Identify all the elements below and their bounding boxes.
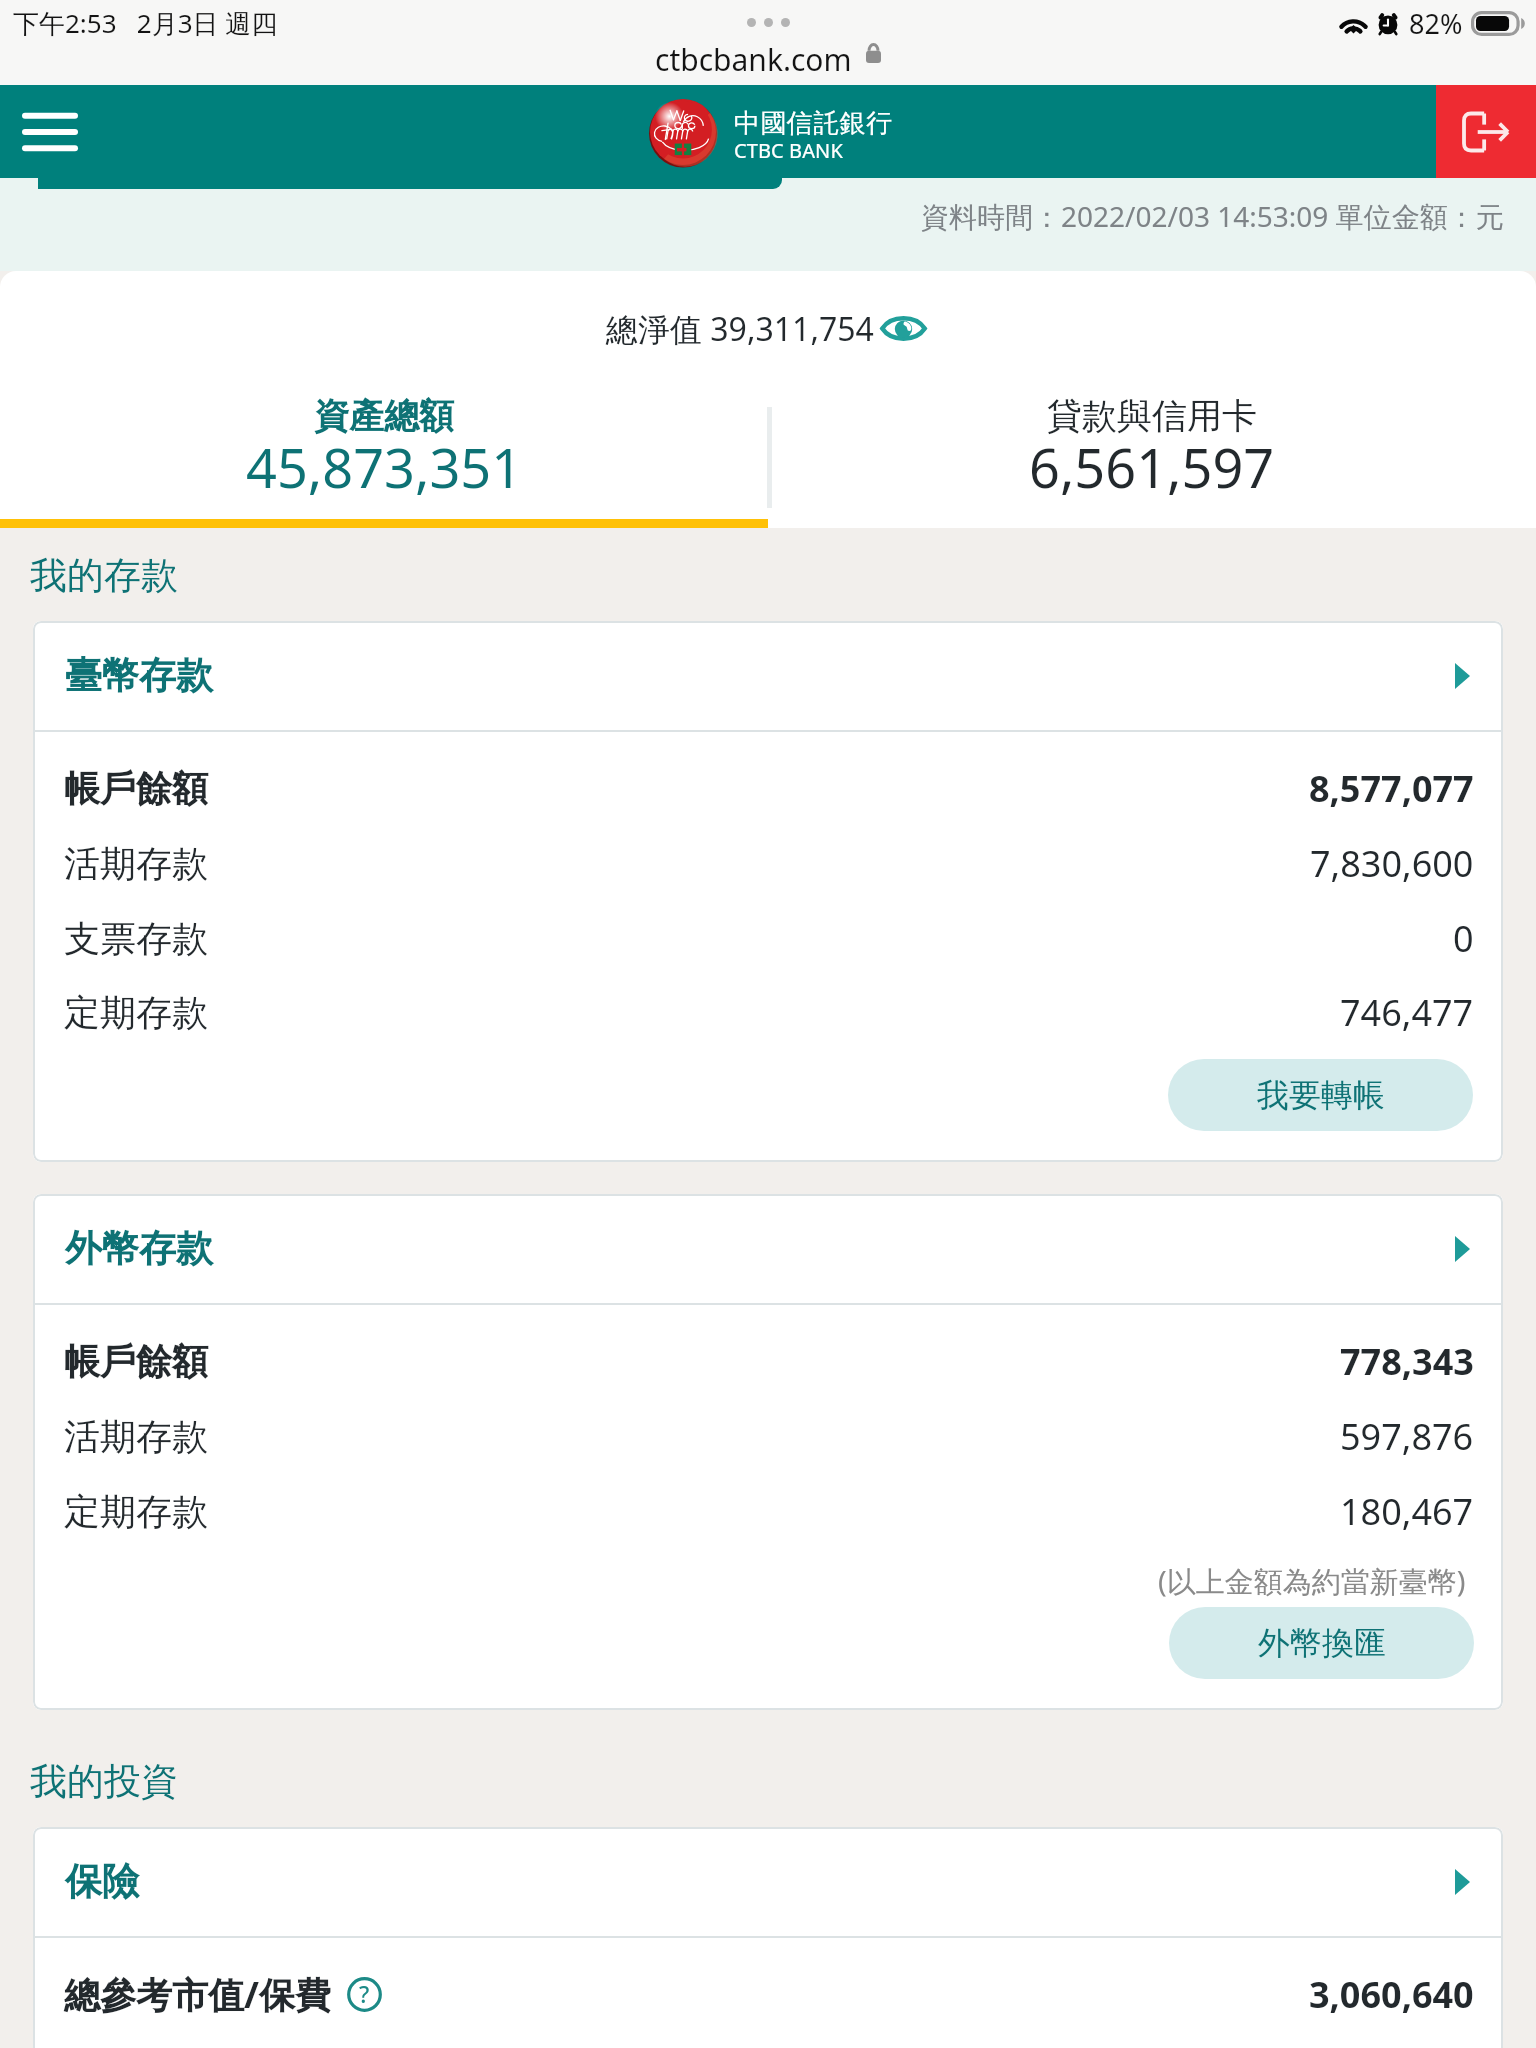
staticText: 45,873,351 [246, 430, 523, 504]
staticText: 定期存款 [64, 990, 208, 1035]
staticText: ? [359, 1978, 370, 2009]
button[interactable]: Logout [1436, 85, 1536, 178]
staticText: 中國信託銀行 [734, 107, 893, 140]
staticText: 外幣換匯 [1258, 1623, 1386, 1663]
staticText: 總淨值 39,311,754 [606, 307, 874, 351]
staticText: 180,467 [1340, 1487, 1474, 1536]
staticText: 臺幣存款 [65, 652, 213, 699]
staticText: 597,876 [1340, 1412, 1474, 1461]
button[interactable]: 外幣換匯 [1169, 1607, 1474, 1679]
button[interactable]: 我的存款 [30, 552, 178, 599]
staticText: 外幣存款 [65, 1225, 213, 1272]
staticText: 我的投資 [30, 1758, 178, 1805]
staticText: 8,577,077 [1309, 764, 1474, 813]
button[interactable]: Menu [0, 85, 100, 178]
button[interactable]: 我的投資 [30, 1758, 178, 1805]
staticText: 我的存款 [30, 552, 178, 599]
staticText: 746,477 [1340, 988, 1474, 1037]
staticText: (以上金額為約當新臺幣) [1158, 1561, 1466, 1601]
staticText: 保險 [65, 1858, 139, 1905]
staticText: 7,830,600 [1310, 839, 1474, 888]
staticText: 貸款與信用卡 [1047, 394, 1257, 438]
staticText: 6,561,597 [1029, 430, 1275, 504]
staticText: 0 [1453, 914, 1474, 963]
staticText: 資產總額 [314, 394, 454, 438]
button[interactable]: 我要轉帳 [1168, 1059, 1473, 1131]
button[interactable]: 保險 [33, 1827, 1503, 1936]
staticText: 下午2:53 2月3日 週四 [13, 5, 278, 41]
button[interactable]: Help [347, 1977, 382, 2012]
staticText: 3,060,640 [1309, 1970, 1474, 2019]
button[interactable]: Toggle balance visibility [880, 314, 927, 343]
staticText: 定期存款 [64, 1489, 208, 1534]
staticText: CTBC BANK [734, 137, 843, 164]
staticText: 778,343 [1340, 1337, 1474, 1386]
staticText: 帳戶餘額 [64, 1339, 208, 1384]
staticText: 我要轉帳 [1257, 1075, 1385, 1115]
staticText: 活期存款 [64, 1414, 208, 1459]
staticText: 82% [1409, 5, 1463, 42]
staticText: 帳戶餘額 [64, 766, 208, 811]
staticText: 支票存款 [64, 916, 208, 961]
button[interactable]: 外幣存款 [33, 1194, 1503, 1303]
button[interactable]: 臺幣存款 [33, 621, 1503, 730]
staticText: 總參考市值/保費 [64, 1970, 331, 2019]
staticText: 資料時間：2022/02/03 14:53:09 單位金額：元 [921, 197, 1504, 235]
staticText: 活期存款 [64, 841, 208, 886]
staticText: ctbcbank.com [655, 39, 852, 80]
